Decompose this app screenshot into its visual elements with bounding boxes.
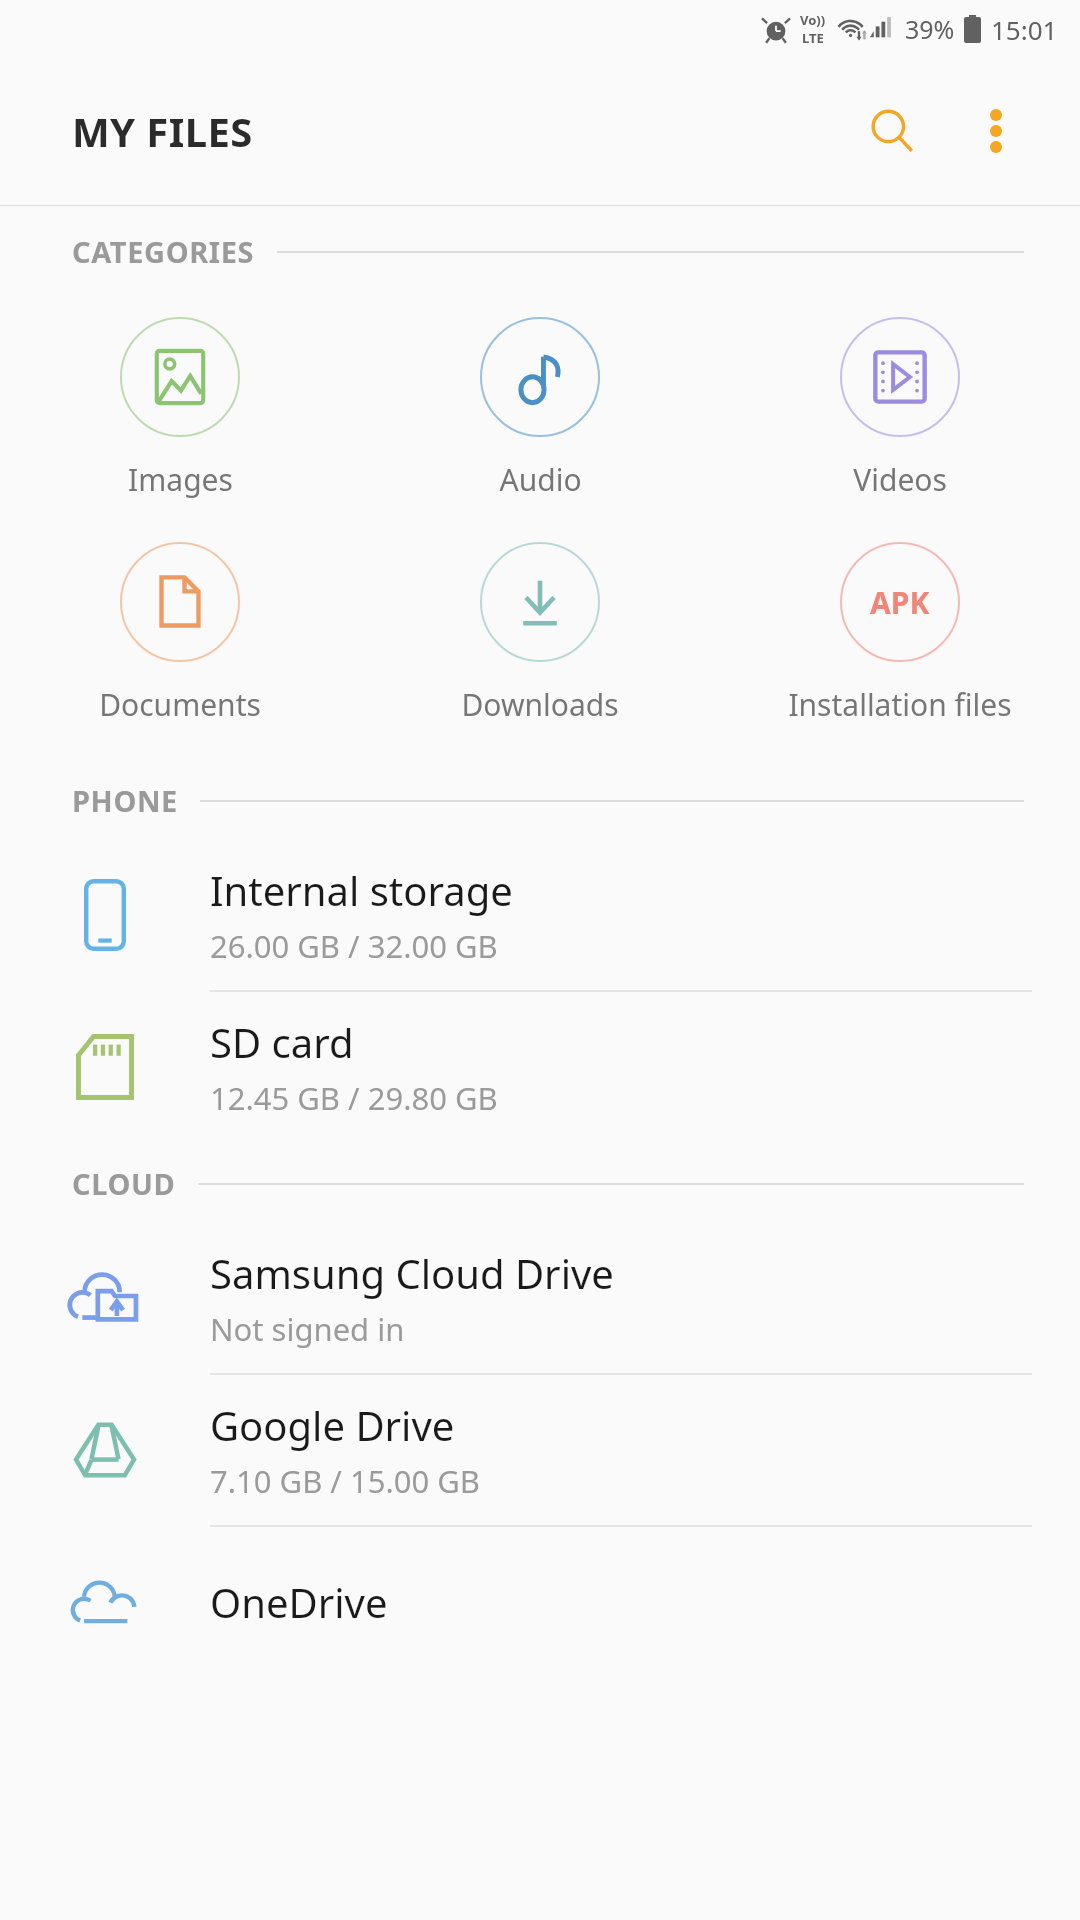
staticText: PHONE [72,781,178,820]
staticText: APK [870,582,930,623]
button[interactable]: Documents [0,538,360,729]
staticText: Samsung Cloud Drive [210,1246,614,1300]
staticText: Documents [99,684,261,725]
button[interactable]: SD card [0,992,1080,1142]
staticText: Google Drive [210,1398,455,1452]
button[interactable]: Samsung Cloud Drive [0,1223,1080,1375]
staticText: Internal storage [210,863,513,917]
staticText: 26.00 GB / 32.00 GB [210,925,498,967]
staticText: CLOUD [72,1164,176,1203]
staticText: Installation files [788,684,1012,725]
button[interactable]: Audio [360,313,720,504]
button[interactable]: OneDrive [0,1527,1080,1677]
button[interactable]: APK [720,538,1080,729]
staticText: 7.10 GB / 15.00 GB [210,1460,480,1502]
staticText: CATEGORIES [72,232,255,271]
button[interactable]: Images [0,313,360,504]
staticText: Videos [853,459,947,500]
staticText: SD card [210,1015,354,1069]
staticText: LTE [802,29,824,47]
staticText: 39% [905,12,955,46]
staticText: OneDrive [210,1575,388,1629]
staticText: 15:01 [991,12,1058,47]
staticText: MY FILES [72,104,253,158]
button[interactable]: Videos [720,313,1080,504]
button[interactable]: Downloads [360,538,720,729]
staticText: Images [128,459,233,500]
button[interactable]: Google Drive [0,1375,1080,1527]
staticText: 12.45 GB / 29.80 GB [210,1077,498,1119]
button[interactable]: More options [948,83,1044,179]
button[interactable]: Search [844,83,940,179]
staticText: Downloads [461,684,619,725]
staticText: Audio [499,459,582,500]
staticText: Not signed in [210,1308,405,1350]
button[interactable]: Internal storage [0,840,1080,992]
staticText: Vo)) [800,11,826,29]
